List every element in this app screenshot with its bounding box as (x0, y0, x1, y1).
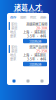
button[interactable]: 推荐 (8, 13, 18, 20)
button[interactable]: 立即投递 (23, 62, 47, 66)
staticText: 高级前端工程师 (26, 22, 47, 26)
staticText: 地点 (10, 30, 16, 34)
staticText: 立即投递 (29, 61, 41, 66)
staticText: 附近 (30, 14, 36, 19)
staticText: 要求 (10, 34, 16, 38)
button[interactable]: Home (7, 77, 21, 84)
staticText: 地点 (10, 53, 16, 57)
staticText: 最新 (20, 14, 26, 19)
staticText: 3-5年 · 本科 (27, 34, 46, 38)
staticText: 职位 (11, 22, 17, 26)
button[interactable]: Jobs (21, 77, 35, 84)
button[interactable]: 附近 (28, 13, 38, 20)
button[interactable]: 最新 (18, 13, 28, 20)
staticText: 资深产品经理 (29, 45, 47, 49)
staticText: 20-30K (36, 26, 47, 30)
staticText: 高薪 (40, 14, 46, 19)
staticText: 上海 · 浦东新区 (23, 53, 46, 57)
staticText: 推荐 (10, 14, 16, 19)
staticText: 薪资 (11, 26, 17, 30)
staticText: 3-5年 · 本科 (27, 57, 46, 61)
staticText: 诸葛人才 (14, 2, 42, 12)
button[interactable]: 立即投递 (23, 39, 47, 43)
staticText: 立即投递 (29, 38, 41, 43)
button[interactable]: 高薪 (38, 13, 48, 20)
staticText: 上海 · 浦东新区 (23, 30, 46, 34)
staticText: 要求 (10, 57, 16, 61)
staticText: 专业人力资源服务平台 (13, 9, 43, 14)
button[interactable]: Profile (35, 77, 49, 84)
staticText: 25-35K (36, 49, 47, 53)
staticText: 薪资 (11, 49, 17, 53)
staticText: 职位 (11, 45, 17, 49)
